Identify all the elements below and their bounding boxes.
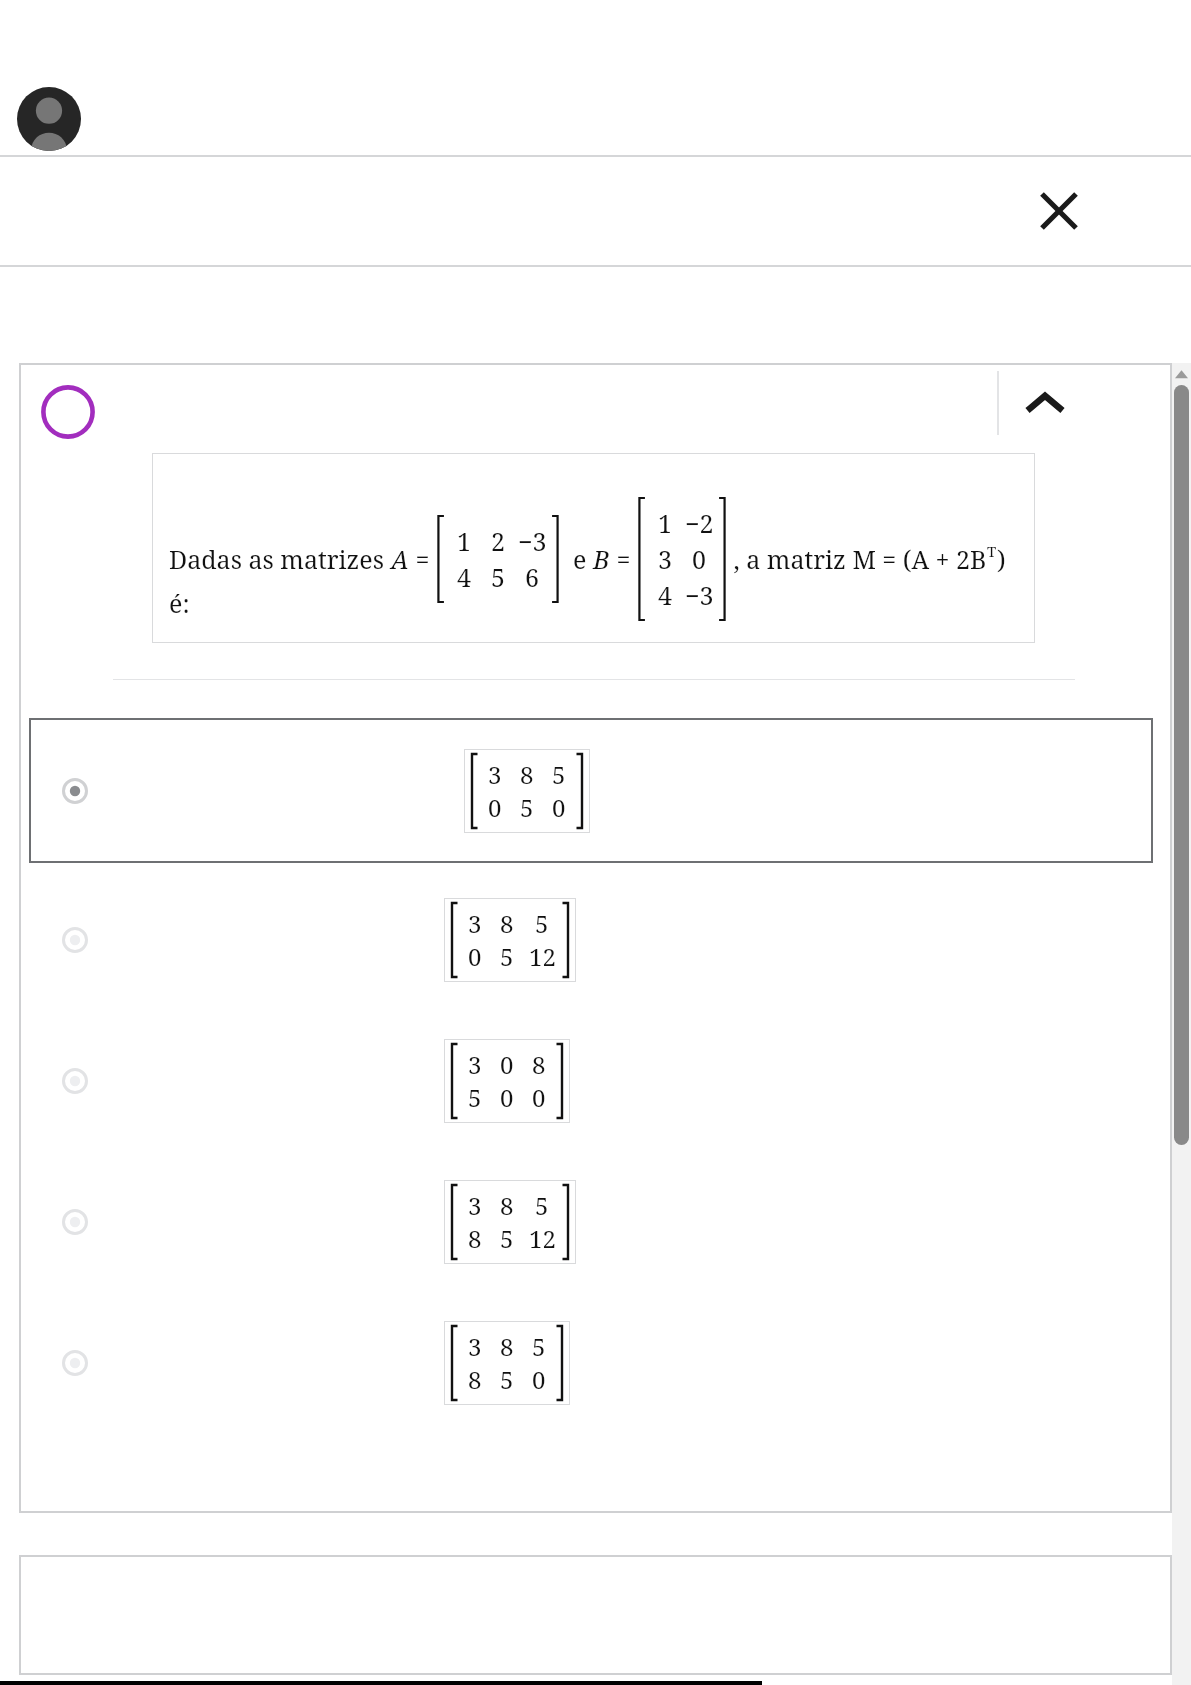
staticText: = bbox=[610, 542, 637, 576]
staticText: 0 bbox=[532, 1081, 546, 1114]
staticText: é: bbox=[169, 586, 190, 620]
staticText: 1 bbox=[457, 524, 471, 558]
staticText: 5 bbox=[520, 791, 534, 824]
staticText: 4 bbox=[457, 560, 471, 594]
button[interactable]: Collapse bbox=[1019, 377, 1071, 429]
staticText: 3 bbox=[658, 542, 672, 576]
button[interactable]: 3 bbox=[29, 718, 1153, 863]
button[interactable]: Close bbox=[1031, 183, 1087, 239]
staticText: −3 bbox=[685, 578, 714, 612]
staticText: Dadas as matrizes bbox=[169, 542, 391, 576]
staticText: 8 bbox=[468, 1222, 482, 1255]
staticText: 8 bbox=[500, 1189, 514, 1222]
staticText: B bbox=[593, 542, 610, 576]
staticText: 3 bbox=[468, 1048, 482, 1081]
staticText: 2 bbox=[491, 524, 505, 558]
staticText: = bbox=[409, 542, 436, 576]
staticText: 8 bbox=[500, 1330, 514, 1363]
staticText: 4 bbox=[658, 578, 672, 612]
staticText: 8 bbox=[520, 758, 534, 791]
staticText: A bbox=[391, 542, 409, 576]
button[interactable]: Profile bbox=[17, 87, 81, 151]
button[interactable]: 3 bbox=[19, 1292, 1172, 1433]
staticText: 0 bbox=[500, 1048, 514, 1081]
staticText: 5 bbox=[500, 1222, 514, 1255]
staticText: −2 bbox=[685, 506, 714, 540]
staticText: 5 bbox=[468, 1081, 482, 1114]
staticText: 12 bbox=[529, 1222, 556, 1255]
button[interactable]: 3 bbox=[19, 1010, 1172, 1151]
staticText: , a matriz M = (A + 2B bbox=[727, 542, 987, 576]
staticText: 5 bbox=[532, 1330, 546, 1363]
staticText: 8 bbox=[532, 1048, 546, 1081]
staticText: 8 bbox=[468, 1363, 482, 1396]
staticText: 5 bbox=[535, 1189, 549, 1222]
staticText: 3 bbox=[488, 758, 502, 791]
button[interactable]: 3 bbox=[19, 870, 1172, 1010]
staticText: 0 bbox=[500, 1081, 514, 1114]
staticText: 5 bbox=[535, 907, 549, 940]
staticText: ) bbox=[997, 542, 1006, 576]
staticText: 5 bbox=[552, 758, 566, 791]
staticText: 3 bbox=[468, 907, 482, 940]
staticText: T bbox=[987, 541, 997, 561]
staticText: 3 bbox=[468, 1330, 482, 1363]
staticText: 3 bbox=[468, 1189, 482, 1222]
staticText: 8 bbox=[500, 907, 514, 940]
staticText: 0 bbox=[488, 791, 502, 824]
button[interactable]: 3 bbox=[19, 1151, 1172, 1292]
staticText: e bbox=[560, 542, 593, 576]
staticText: 12 bbox=[529, 940, 556, 973]
staticText: 0 bbox=[692, 542, 706, 576]
staticText: 6 bbox=[525, 560, 539, 594]
staticText: 0 bbox=[552, 791, 566, 824]
staticText: 5 bbox=[500, 1363, 514, 1396]
staticText: 1 bbox=[658, 506, 672, 540]
staticText: 5 bbox=[491, 560, 505, 594]
staticText: 5 bbox=[500, 940, 514, 973]
staticText: 0 bbox=[468, 940, 482, 973]
staticText: 0 bbox=[532, 1363, 546, 1396]
staticText: −3 bbox=[518, 524, 547, 558]
